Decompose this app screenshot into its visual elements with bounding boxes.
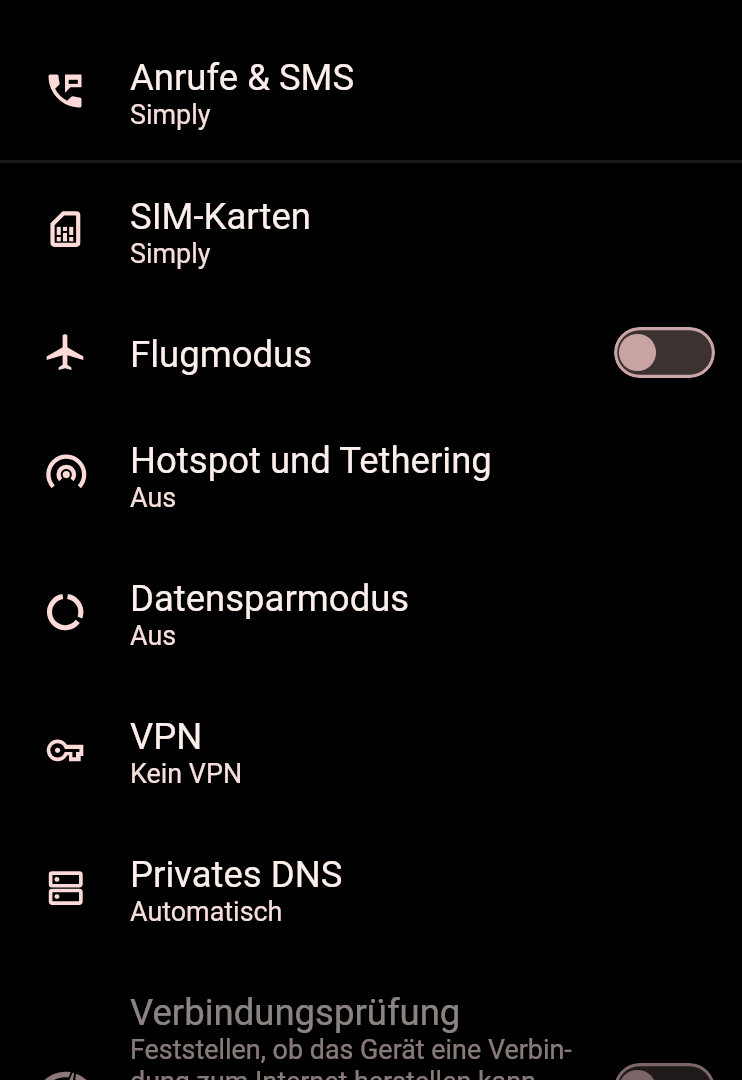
staticText: dung zum Internet herstellen kann xyxy=(130,1066,536,1080)
staticText: Privates DNS xyxy=(130,853,343,896)
staticText: Simply xyxy=(130,238,211,270)
staticText: Anrufe & SMS xyxy=(130,56,355,99)
button[interactable]: Toggle Flugmodus xyxy=(614,327,715,378)
staticText: Datensparmodus xyxy=(130,577,410,620)
staticText: SIM-Karten xyxy=(130,195,312,238)
button[interactable]: Datensparmodus xyxy=(0,543,742,681)
button[interactable]: SIM-Karten xyxy=(0,161,742,299)
staticText: Flugmodus xyxy=(130,333,313,376)
button[interactable]: Anrufe & SMS xyxy=(0,23,742,159)
staticText: Feststellen, ob das Gerät eine Verbin- xyxy=(130,1034,572,1066)
staticText: Hotspot und Tethering xyxy=(130,439,492,482)
staticText: Aus xyxy=(130,620,177,652)
button[interactable]: Hotspot und Tethering xyxy=(0,405,742,543)
staticText: VPN xyxy=(130,715,203,758)
staticText: Kein VPN xyxy=(130,758,243,790)
staticText: Automatisch xyxy=(130,896,283,928)
staticText: Verbindungsprüfung xyxy=(130,991,461,1034)
button[interactable]: Flugmodus xyxy=(0,299,742,405)
button[interactable]: Verbindungsprüfung xyxy=(0,957,742,1080)
staticText: Simply xyxy=(130,99,211,131)
button[interactable]: Toggle Verbindungsprüfung xyxy=(614,1063,715,1080)
button[interactable]: Privates DNS xyxy=(0,819,742,957)
staticText: Aus xyxy=(130,482,177,514)
button[interactable]: VPN xyxy=(0,681,742,819)
